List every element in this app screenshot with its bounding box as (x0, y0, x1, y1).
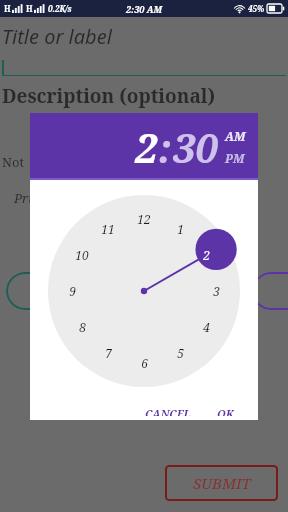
staticText: 6 (141, 355, 148, 371)
staticText: 8 (79, 319, 86, 335)
staticText: OK (217, 406, 234, 416)
button[interactable]: AM (225, 128, 246, 144)
staticText: 11 (101, 221, 115, 237)
staticText: Description (optional) (2, 83, 216, 109)
staticText: 2 (203, 247, 210, 263)
staticText: 4 (203, 319, 210, 335)
staticText: Pri (14, 189, 33, 207)
staticText: 30 (173, 120, 218, 174)
staticText: CANCEL (145, 406, 191, 416)
button[interactable]: Option one (6, 272, 60, 310)
button[interactable]: Option two (252, 272, 288, 310)
staticText: 7 (105, 345, 112, 361)
staticText: 1 (177, 221, 184, 237)
staticText: SUBMIT (193, 473, 251, 493)
staticText: 0.2K/s (48, 3, 72, 14)
staticText: 45% (248, 3, 265, 14)
staticText: Title or label (2, 23, 112, 50)
staticText: 2:30 AM (126, 3, 163, 15)
button[interactable]: CANCEL (139, 402, 197, 420)
button[interactable]: 2 (135, 120, 218, 174)
button[interactable]: PM (225, 150, 245, 166)
staticText: 10 (75, 247, 89, 263)
staticText: H (26, 3, 33, 14)
button[interactable]: SUBMIT (165, 465, 278, 501)
staticText: 5 (177, 345, 184, 361)
staticText: 12 (137, 211, 151, 227)
button[interactable]: OK (211, 402, 240, 420)
staticText: H (4, 3, 11, 14)
staticText: 2 (135, 120, 158, 174)
staticText: Not (2, 153, 24, 171)
staticText: 3 (213, 283, 220, 299)
staticText: AM (225, 128, 246, 144)
staticText: PM (225, 150, 245, 166)
staticText: : (158, 120, 173, 174)
staticText: 9 (69, 283, 76, 299)
